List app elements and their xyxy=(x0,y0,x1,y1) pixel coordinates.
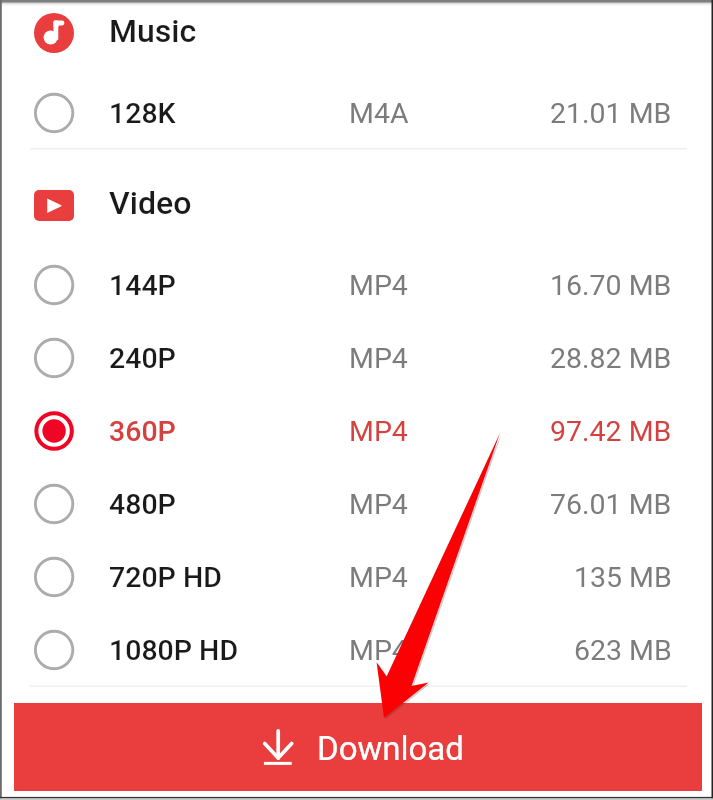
button[interactable]: 240P xyxy=(0,322,713,394)
staticText: 97.42 MB xyxy=(550,415,672,448)
staticText: 720P HD xyxy=(109,561,222,594)
staticText: MP4 xyxy=(349,561,408,594)
staticText: 76.01 MB xyxy=(550,488,672,521)
button[interactable]: 720P HD xyxy=(0,541,713,613)
button[interactable]: 1080P HD xyxy=(0,614,713,686)
staticText: Download xyxy=(317,729,464,768)
staticText: Video xyxy=(109,184,192,222)
staticText: 128K xyxy=(109,97,176,130)
staticText: Music xyxy=(109,12,197,50)
button[interactable]: 480P xyxy=(0,468,713,540)
other: Video xyxy=(34,185,74,225)
button[interactable]: Download xyxy=(14,703,702,791)
staticText: 28.82 MB xyxy=(550,342,672,375)
staticText: MP4 xyxy=(349,342,408,375)
button[interactable]: 144P xyxy=(0,249,713,321)
button[interactable]: 128K xyxy=(0,77,713,149)
staticText: 360P xyxy=(109,415,176,448)
other: Music xyxy=(34,13,74,53)
staticText: MP4 xyxy=(349,415,408,448)
staticText: 21.01 MB xyxy=(550,97,672,130)
staticText: 240P xyxy=(109,342,176,375)
staticText: 480P xyxy=(109,488,176,521)
staticText: 623 MB xyxy=(574,634,672,667)
button[interactable]: 360P xyxy=(0,395,713,467)
staticText: 135 MB xyxy=(574,561,672,594)
staticText: MP4 xyxy=(349,634,408,667)
staticText: M4A xyxy=(349,97,409,130)
staticText: MP4 xyxy=(349,488,408,521)
staticText: 144P xyxy=(109,269,176,302)
staticText: MP4 xyxy=(349,269,408,302)
staticText: 1080P HD xyxy=(109,634,239,667)
staticText: 16.70 MB xyxy=(550,269,672,302)
